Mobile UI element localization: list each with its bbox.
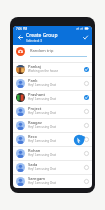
staticText: Rohan [28,148,41,153]
staticText: Hey! I am using Chat [28,181,57,185]
staticText: Hey! I am using Chat [28,153,57,157]
staticText: Random trip [30,48,54,53]
staticText: 7:06 PM [16,27,28,31]
button[interactable]: Pank [13,76,92,90]
button[interactable]: Add group photo [16,47,25,56]
staticText: Selected: 3 [26,39,43,43]
staticText: Hey! I am using Chat [28,83,57,87]
staticText: Saregam [28,176,45,181]
staticText: Raagav [28,120,42,125]
staticText: Hey! I am using Chat [28,139,57,143]
button[interactable]: Back [15,32,26,43]
staticText: Project [28,106,42,111]
staticText: Hey! I am using Chat [28,111,57,115]
staticText: Sada [28,162,38,167]
staticText: Hey! I am using Chat [28,97,57,101]
button[interactable]: Recx [13,132,92,146]
staticText: Pank [28,78,38,83]
staticText: Working on the house [28,69,59,73]
staticText: Hey! I am using Chat [28,125,57,129]
button[interactable]: Sada [13,160,92,174]
button[interactable]: Pankaj [13,62,92,76]
staticText: Recx [28,134,37,139]
button[interactable]: Raagav [13,118,92,132]
button[interactable]: Project [13,104,92,118]
staticText: Hey! I am using Chat [28,167,57,171]
staticText: Create Group [26,32,58,39]
staticText: Prashant [28,92,46,97]
button[interactable]: Done [80,32,91,43]
staticText: Pankaj [28,64,41,69]
button[interactable]: Saregam [13,174,92,188]
button[interactable]: Rohan [13,146,92,160]
button[interactable]: Prashant [13,90,92,104]
